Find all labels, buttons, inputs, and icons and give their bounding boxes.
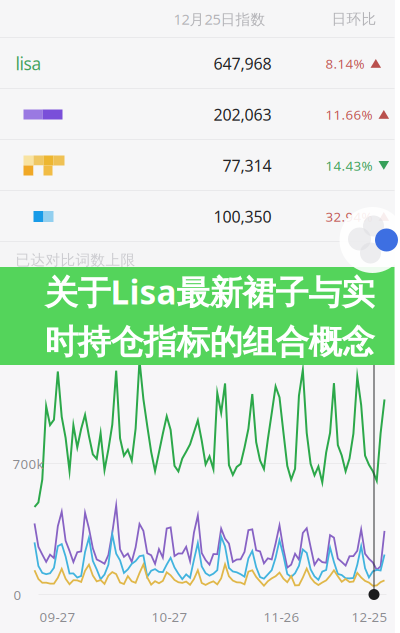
- staticText: 700k: [12, 455, 43, 473]
- staticText: lisa: [15, 52, 41, 75]
- staticText: 日环比: [331, 10, 376, 28]
- staticText: 时持仓指标的组合概念: [44, 322, 374, 363]
- staticText: 已达对比词数上限: [15, 251, 135, 269]
- staticText: 11-26: [263, 608, 299, 626]
- staticText: 32.94%: [325, 208, 372, 225]
- staticText: 14.43%: [325, 157, 372, 174]
- staticText: 100,350: [213, 206, 271, 227]
- staticText: 12月25日指数: [173, 9, 265, 29]
- staticText: 647,968: [213, 53, 271, 74]
- staticText: 12-25: [351, 608, 387, 626]
- staticText: 11.66%: [325, 106, 372, 123]
- staticText: 关于Lisa最新裙子与实: [44, 269, 374, 314]
- staticText: 0: [13, 586, 21, 604]
- staticText: 8.14%: [325, 55, 364, 72]
- button[interactable]: 77,314: [0, 140, 394, 191]
- button[interactable]: 202,063: [0, 89, 394, 140]
- button[interactable]: lisa: [0, 38, 394, 89]
- staticText: 09-27: [39, 608, 75, 626]
- button[interactable]: Quick actions: [339, 207, 400, 273]
- staticText: 202,063: [213, 104, 271, 125]
- button[interactable]: 100,350: [0, 191, 394, 242]
- staticText: 77,314: [222, 155, 271, 176]
- staticText: 10-27: [151, 608, 187, 626]
